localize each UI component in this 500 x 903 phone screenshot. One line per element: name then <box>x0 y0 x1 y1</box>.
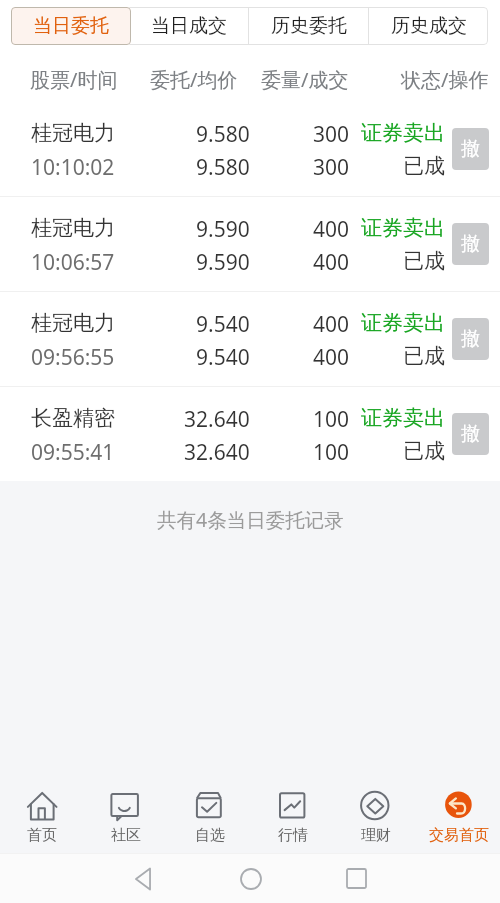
staticText: 32.640 <box>184 405 250 434</box>
staticText: 撤 <box>461 422 480 446</box>
staticText: 证券卖出 <box>361 215 445 241</box>
staticText: 撤 <box>461 327 480 351</box>
staticText: 交易首页 <box>429 826 489 845</box>
staticText: 历史委托 <box>271 14 347 38</box>
staticText: 400 <box>313 248 350 277</box>
staticText: 自选 <box>195 826 225 845</box>
staticText: 桂冠电力 <box>31 215 115 241</box>
staticText: 理财 <box>361 826 391 845</box>
staticText: 10:06:57 <box>31 248 115 277</box>
button[interactable]: Back <box>122 858 163 899</box>
staticText: 9.540 <box>196 310 250 339</box>
staticText: 历史成交 <box>391 14 467 38</box>
staticText: 委量/成交 <box>261 66 349 93</box>
button[interactable]: 自选 <box>168 750 251 853</box>
button[interactable]: 长盈精密 <box>0 386 500 481</box>
button[interactable]: 历史委托 <box>249 7 368 45</box>
staticText: 9.580 <box>196 120 250 149</box>
button[interactable]: Home <box>230 858 271 899</box>
staticText: 证券卖出 <box>361 120 445 146</box>
button[interactable]: 撤 <box>452 128 489 170</box>
staticText: 09:56:55 <box>31 343 115 372</box>
staticText: 300 <box>313 153 350 182</box>
staticText: 9.590 <box>196 215 250 244</box>
button[interactable]: 桂冠电力 <box>0 291 500 386</box>
staticText: 09:55:41 <box>31 438 115 467</box>
button[interactable]: 历史成交 <box>369 7 488 45</box>
button[interactable]: 桂冠电力 <box>0 101 500 196</box>
staticText: 已成 <box>403 248 445 274</box>
button[interactable]: 撤 <box>452 413 489 455</box>
staticText: 共有4条当日委托记录 <box>157 506 344 533</box>
staticText: 已成 <box>403 153 445 179</box>
staticText: 100 <box>313 438 350 467</box>
staticText: 300 <box>313 120 350 149</box>
staticText: 长盈精密 <box>31 405 115 431</box>
staticText: 32.640 <box>184 438 250 467</box>
button[interactable]: 理财 <box>334 750 417 853</box>
staticText: 已成 <box>403 438 445 464</box>
staticText: 委托/均价 <box>150 66 238 93</box>
staticText: 桂冠电力 <box>31 310 115 336</box>
staticText: 当日成交 <box>151 14 227 38</box>
staticText: 首页 <box>27 826 57 845</box>
staticText: 证券卖出 <box>361 405 445 431</box>
staticText: 桂冠电力 <box>31 120 115 146</box>
button[interactable]: 交易首页 <box>417 750 500 853</box>
button[interactable]: 撤 <box>452 223 489 265</box>
button[interactable]: 行情 <box>251 750 334 853</box>
staticText: 证券卖出 <box>361 310 445 336</box>
staticText: 行情 <box>278 826 308 845</box>
staticText: 9.540 <box>196 343 250 372</box>
button[interactable]: 社区 <box>84 750 168 853</box>
button[interactable]: 当日成交 <box>130 7 248 45</box>
button[interactable]: 桂冠电力 <box>0 196 500 291</box>
staticText: 社区 <box>111 826 141 845</box>
staticText: 状态/操作 <box>401 66 489 93</box>
staticText: 撤 <box>461 232 480 256</box>
staticText: 撤 <box>461 137 480 161</box>
button[interactable] <box>11 7 129 45</box>
staticText: 9.580 <box>196 153 250 182</box>
staticText: 400 <box>313 310 350 339</box>
button[interactable]: 撤 <box>452 318 489 360</box>
staticText: 400 <box>313 343 350 372</box>
staticText: 100 <box>313 405 350 434</box>
staticText: 400 <box>313 215 350 244</box>
staticText: 股票/时间 <box>30 66 118 93</box>
staticText: 已成 <box>403 343 445 369</box>
staticText: 10:10:02 <box>31 153 115 182</box>
staticText: 9.590 <box>196 248 250 277</box>
button[interactable]: 当日委托 <box>11 7 131 45</box>
button[interactable]: Recents <box>336 858 377 899</box>
button[interactable]: 首页 <box>0 750 84 853</box>
staticText: 当日委托 <box>33 14 109 38</box>
